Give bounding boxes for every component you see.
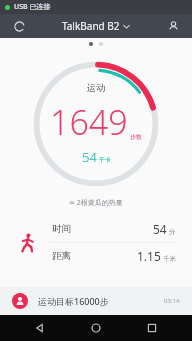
staticText: 千米: [163, 255, 176, 263]
staticText: 03:14: [164, 297, 180, 305]
staticText: 分: [169, 228, 176, 236]
staticText: 千卡: [99, 156, 111, 164]
staticText: 54: [82, 148, 97, 166]
staticText: USB 已连接: [14, 2, 51, 12]
staticText: 54: [153, 221, 167, 237]
button[interactable]: Back: [24, 315, 56, 341]
staticText: 步数: [130, 133, 142, 141]
button[interactable]: TalkBand B2: [58, 17, 134, 35]
button[interactable]: Home: [80, 315, 112, 341]
staticText: 距离: [52, 250, 71, 262]
button[interactable]: 时间: [50, 216, 178, 242]
staticText: TalkBand B2: [62, 19, 120, 33]
staticText: 时间: [52, 223, 71, 235]
button[interactable]: 距离: [50, 243, 178, 269]
staticText: 运动目标16000步: [38, 295, 109, 307]
button[interactable]: Sync: [10, 17, 28, 35]
staticText: 运动: [87, 82, 105, 93]
button[interactable]: Profile: [164, 17, 182, 35]
button[interactable]: 运动目标16000步: [0, 287, 192, 315]
staticText: 1649: [50, 99, 128, 145]
staticText: ≈ 2根黄瓜的热量: [69, 198, 123, 208]
button[interactable]: Recents: [136, 315, 168, 341]
staticText: 1.15: [137, 248, 161, 264]
